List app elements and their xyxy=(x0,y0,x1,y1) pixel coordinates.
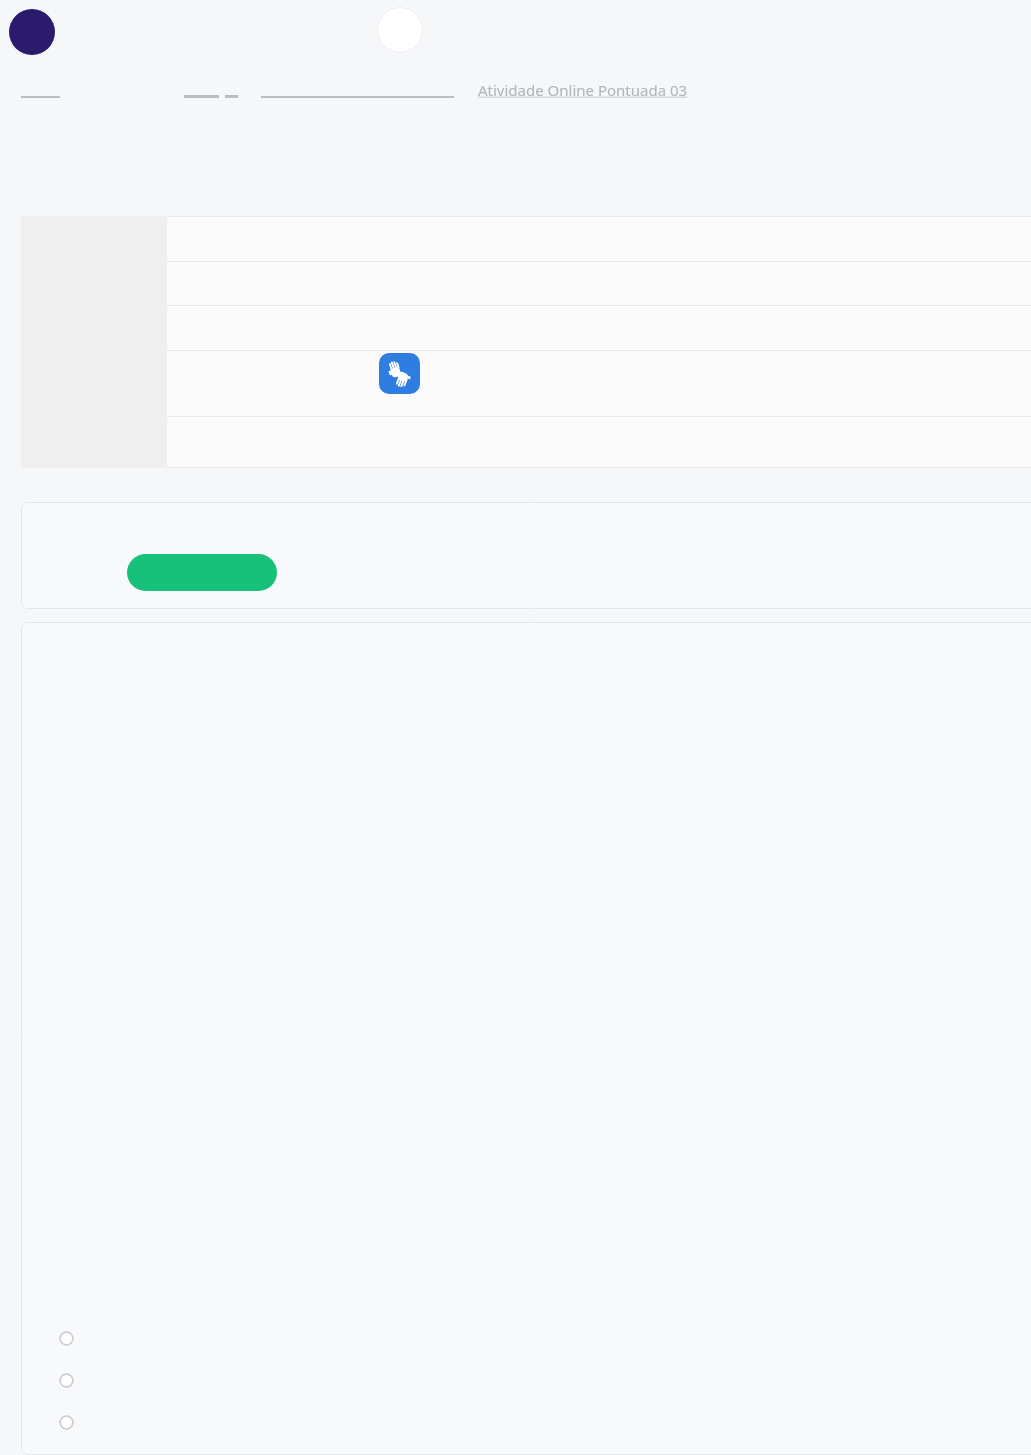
button[interactable] xyxy=(21,262,1031,306)
button[interactable] xyxy=(21,351,1031,417)
button[interactable]: Acessibilidade em Libras xyxy=(379,353,420,394)
staticText: Atividade Online Pontuada 03 xyxy=(478,80,688,100)
button[interactable] xyxy=(21,216,1031,262)
button[interactable] xyxy=(21,306,1031,351)
button[interactable]: Iniciar atividade xyxy=(127,554,277,591)
button[interactable]: Atividade Online Pontuada 03 xyxy=(478,80,688,100)
button[interactable]: Logotipo xyxy=(377,7,423,53)
button[interactable]: Perfil do usuário xyxy=(9,9,55,55)
button[interactable] xyxy=(21,417,1031,468)
